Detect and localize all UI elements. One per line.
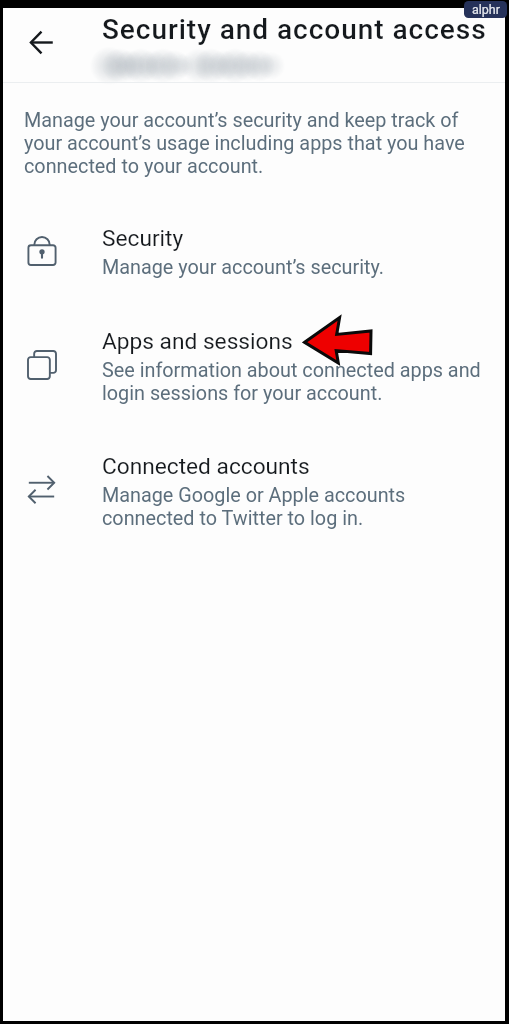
staticText: Manage your account’s security. — [102, 256, 502, 279]
button[interactable]: Security — [3, 217, 505, 287]
staticText: alphr — [472, 2, 500, 17]
staticText: Connected accounts — [102, 453, 310, 480]
staticText: Apps and sessions — [102, 328, 293, 355]
staticText: See information about connected apps and… — [102, 359, 486, 405]
button[interactable]: Apps and sessions — [3, 320, 505, 413]
button[interactable]: Back — [19, 20, 63, 64]
staticText: Manage Google or Apple accounts connecte… — [102, 484, 420, 530]
button[interactable]: Connected accounts — [3, 445, 505, 538]
staticText: Security and account access — [102, 13, 487, 46]
staticText: Manage your account’s security and keep … — [24, 109, 470, 178]
staticText: Security — [102, 225, 184, 252]
